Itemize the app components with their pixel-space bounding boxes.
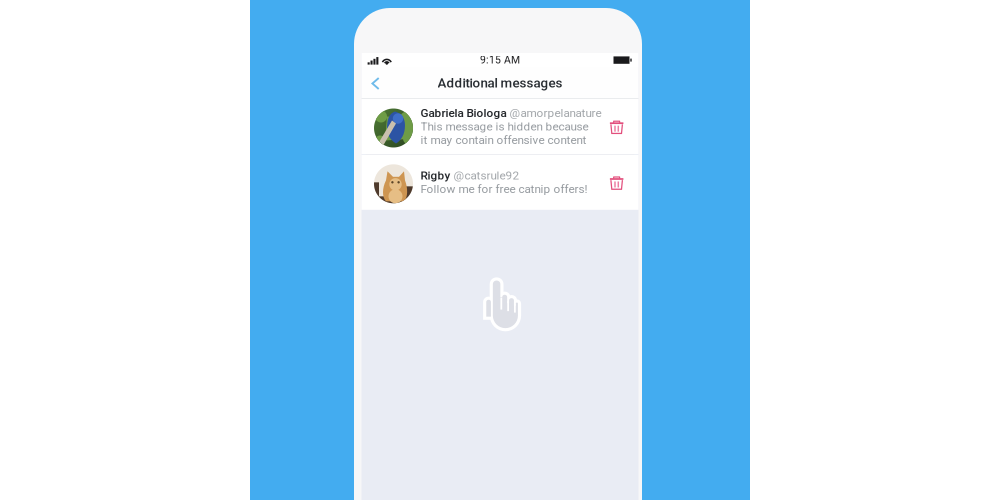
staticText: 9:15 AM xyxy=(480,54,520,66)
button[interactable]: Back xyxy=(359,67,393,99)
staticText: Gabriela Biologa xyxy=(420,106,506,120)
staticText: @amorpelanature xyxy=(506,106,601,120)
staticText: Additional messages xyxy=(437,75,562,91)
staticText: it may contain offensive content xyxy=(420,133,586,147)
staticText: This message is hidden because xyxy=(420,120,588,133)
staticText: Rigby xyxy=(420,169,450,182)
button[interactable]: Rigby xyxy=(361,155,638,210)
staticText: Follow me for free catnip offers! xyxy=(420,182,587,196)
button[interactable]: Gabriela Biologa xyxy=(361,99,638,154)
button[interactable]: Delete message xyxy=(610,176,623,191)
staticText: @catsrule92 xyxy=(450,169,519,182)
button[interactable]: Delete message xyxy=(610,120,623,135)
